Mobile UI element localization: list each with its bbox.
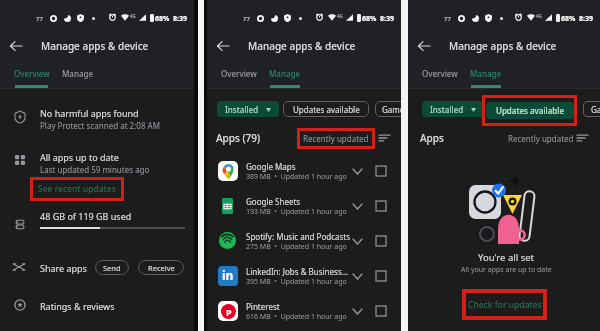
staticText: 4G [337, 13, 343, 19]
staticText: Pinterest [246, 301, 358, 312]
staticText: No harmful apps found [40, 107, 139, 119]
staticText: Manage apps & device [248, 39, 356, 53]
staticText: 77 [36, 15, 43, 23]
staticText: Share apps [40, 262, 87, 274]
staticText: 48 GB of 119 GB used [40, 210, 132, 222]
staticText: Recently updated [508, 133, 574, 144]
button[interactable]: Overview [416, 58, 463, 89]
button[interactable]: Select app [373, 303, 389, 319]
button[interactable]: Recently updated [297, 128, 375, 149]
button[interactable]: Installed [217, 101, 279, 117]
staticText: Manage [269, 68, 301, 79]
staticText: Manage [470, 68, 502, 79]
staticText: All apps up to date [40, 151, 119, 163]
button[interactable]: Select app [373, 233, 389, 249]
button[interactable]: Google Maps [207, 153, 401, 188]
staticText: P [226, 306, 232, 318]
staticText: 4G [130, 13, 136, 19]
staticText: Last updated 59 minutes ago [40, 164, 150, 175]
button[interactable]: Google Sheets [207, 188, 401, 223]
button[interactable]: Expand [349, 198, 365, 214]
staticText: Updates available [496, 105, 564, 116]
button[interactable]: See recent updates [30, 177, 124, 201]
staticText: Manage [62, 68, 94, 79]
staticText: Overview [221, 68, 257, 79]
button[interactable]: Expand [349, 303, 365, 319]
staticText: Installed [430, 104, 464, 115]
staticText: 193 MB • Updated 1 hour ago [246, 207, 347, 217]
staticText: Ratings & reviews [40, 300, 115, 312]
staticText: Overview [422, 68, 458, 79]
button[interactable]: Overview [8, 58, 55, 89]
button[interactable]: Overview [215, 58, 262, 89]
staticText: Games [591, 104, 600, 115]
button[interactable]: Installed [422, 101, 484, 117]
other: Sort [577, 134, 588, 142]
staticText: Play Protect scanned at 2:08 AM [40, 120, 160, 131]
staticText: Games [382, 104, 409, 115]
staticText: Receive [148, 263, 175, 273]
staticText: Send [103, 263, 121, 273]
button[interactable]: Back [4, 34, 28, 58]
button[interactable]: Receive [138, 260, 184, 275]
staticText: See recent updates [38, 183, 116, 195]
staticText: Apps (79) [216, 131, 261, 145]
button[interactable]: Back [211, 34, 235, 58]
staticText: All your apps are up to date [461, 265, 552, 275]
button[interactable]: Spotify: Music and Podcasts [207, 223, 401, 258]
staticText: 8:39 [380, 14, 394, 24]
staticText: Updates available [293, 104, 360, 115]
staticText: Spotify: Music and Podcasts [246, 231, 358, 242]
button[interactable]: Manage [263, 58, 306, 89]
staticText: Recently updated [303, 133, 369, 144]
staticText: 77 [444, 15, 451, 23]
staticText: Apps [420, 131, 444, 145]
staticText: 68% [155, 14, 170, 24]
button[interactable]: Games [583, 101, 600, 117]
button[interactable]: Updates available [283, 101, 369, 117]
button[interactable]: Manage [464, 58, 507, 89]
staticText: 68% [362, 14, 377, 24]
button[interactable]: Expand [349, 233, 365, 249]
button[interactable]: Select app [373, 198, 389, 214]
staticText: LinkedIn: Jobs & Business... [246, 266, 358, 277]
other: Sort [379, 134, 390, 142]
staticText: Google Maps [246, 161, 358, 172]
button[interactable]: Send [95, 260, 129, 275]
staticText: 616 MB • Updated 1 hour ago [246, 312, 347, 322]
button[interactable]: in [207, 258, 401, 293]
staticText: 395 MB • Updated 1 hour ago [246, 277, 347, 287]
button[interactable]: Updates available [486, 102, 574, 119]
staticText: in [222, 267, 234, 283]
staticText: Google Sheets [246, 196, 358, 207]
staticText: Installed [225, 104, 259, 115]
button[interactable]: Manage [56, 58, 99, 89]
button[interactable]: Select app [373, 163, 389, 179]
staticText: Manage apps & device [449, 39, 557, 53]
staticText: 8:39 [173, 14, 187, 24]
staticText: 8:39 [579, 14, 593, 24]
button[interactable]: Expand [349, 163, 365, 179]
button[interactable]: Check for updates [462, 289, 547, 320]
staticText: 77 [243, 15, 250, 23]
staticText: 389 MB • Updated 1 hour ago [246, 172, 347, 182]
button[interactable]: Select app [373, 268, 389, 284]
button[interactable]: P [207, 293, 401, 328]
button[interactable]: Expand [349, 268, 365, 284]
staticText: 4G [536, 13, 542, 19]
button[interactable]: Games [375, 101, 415, 117]
staticText: You're all set [478, 251, 534, 264]
staticText: Overview [14, 68, 50, 79]
button[interactable]: Back [412, 34, 436, 58]
staticText: 275 MB • Updated 1 hour ago [246, 242, 347, 252]
staticText: 68% [561, 14, 576, 24]
staticText: Manage apps & device [41, 39, 149, 53]
staticText: Check for updates [468, 299, 542, 311]
